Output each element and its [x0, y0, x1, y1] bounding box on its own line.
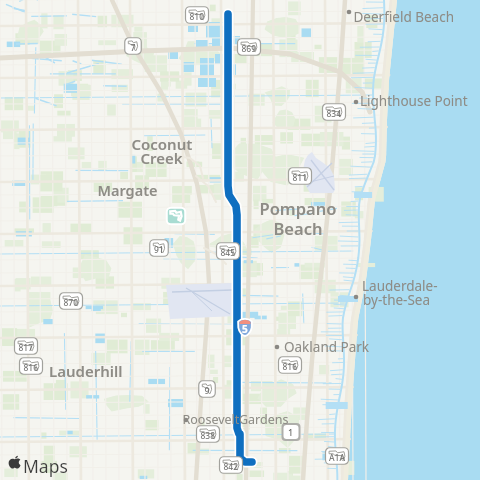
- button[interactable]: Map: [0, 0, 480, 480]
- button[interactable]: Apple Maps: [4, 454, 68, 476]
